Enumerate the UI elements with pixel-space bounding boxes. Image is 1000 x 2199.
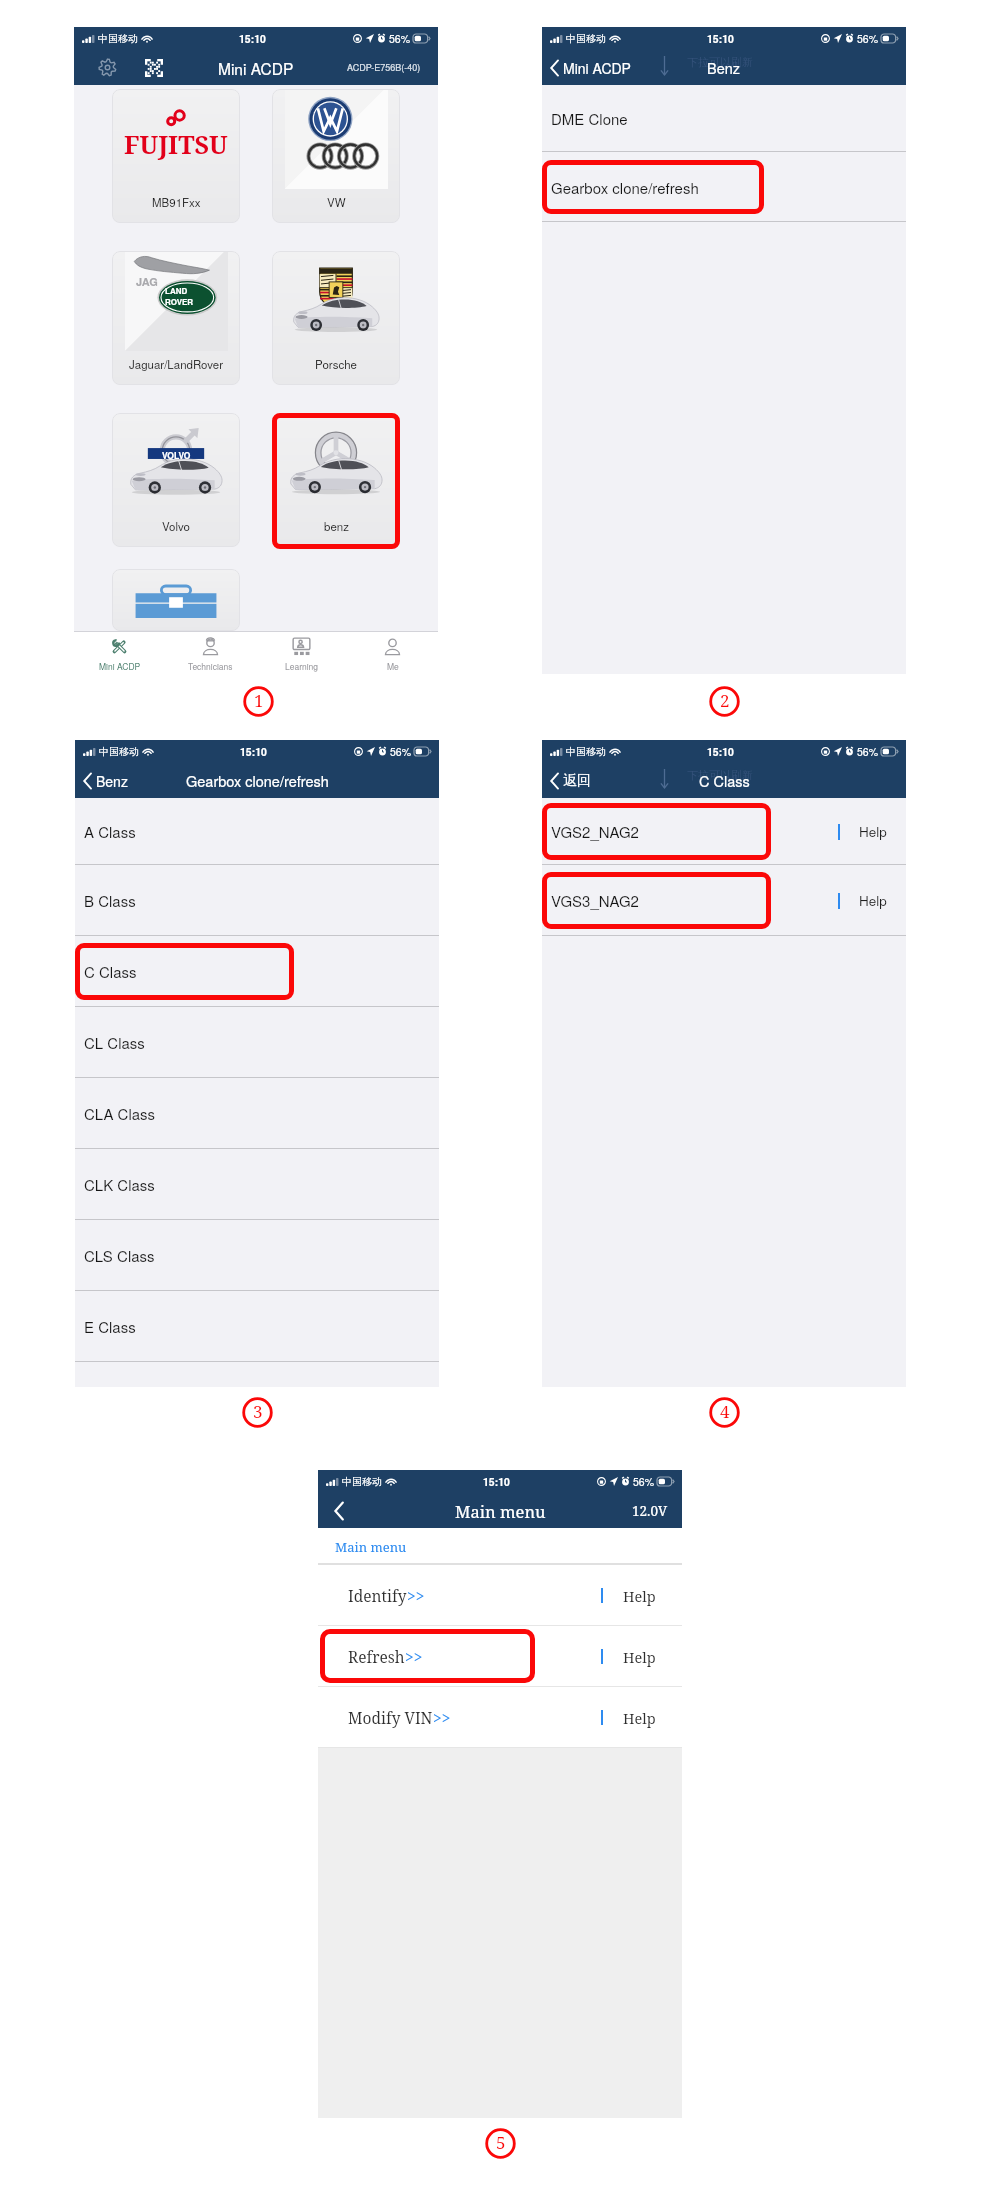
staticText: Me xyxy=(387,660,399,672)
staticText: 4 xyxy=(720,1400,730,1423)
staticText: JAG xyxy=(136,274,158,290)
staticText: ROVER xyxy=(165,296,194,307)
button[interactable]: VGS2_NAG2 xyxy=(542,798,906,865)
staticText: VOLVO xyxy=(162,449,191,461)
button[interactable]: C Class xyxy=(75,936,439,1007)
staticText: Mini ACDP xyxy=(218,57,294,79)
staticText: VGS3_NAG2 xyxy=(551,890,639,911)
staticText: DME Clone xyxy=(551,108,628,129)
staticText: 12.0V xyxy=(632,1502,668,1520)
staticText: Gearbox clone/refresh xyxy=(186,770,329,791)
staticText: Mini ACDP xyxy=(99,660,141,672)
staticText: ACDP-E756B(-40) xyxy=(347,61,421,74)
staticText: >> xyxy=(405,1646,423,1667)
staticText: CL Class xyxy=(84,1032,145,1053)
staticText: CLK Class xyxy=(84,1174,155,1195)
staticText: Help xyxy=(859,891,887,910)
button[interactable]: CL Class xyxy=(75,1007,439,1078)
staticText: 15:10 xyxy=(239,31,266,46)
staticText: benz xyxy=(324,518,349,534)
button[interactable]: Technicians xyxy=(165,632,256,676)
staticText: 15:10 xyxy=(240,744,267,759)
staticText: E Class xyxy=(84,1316,136,1337)
staticText: Help xyxy=(859,822,887,841)
button[interactable]: Help xyxy=(840,865,906,936)
staticText: 15:10 xyxy=(707,31,734,46)
button[interactable]: A Class xyxy=(75,798,439,865)
button[interactable]: Gearbox clone/refresh xyxy=(542,152,906,222)
button[interactable]: Help xyxy=(603,1687,682,1748)
button[interactable]: VOLVO xyxy=(112,413,240,547)
button[interactable]: Help xyxy=(840,798,906,865)
staticText: C Class xyxy=(84,961,137,982)
button[interactable] xyxy=(112,569,240,631)
staticText: Jaguar/LandRover xyxy=(129,356,224,372)
staticText: 中国移动 xyxy=(98,32,138,45)
staticText: 1 xyxy=(254,689,264,712)
button[interactable]: Refresh xyxy=(318,1626,682,1687)
button[interactable]: LAND xyxy=(112,251,240,385)
staticText: Help xyxy=(623,1586,656,1606)
staticText: LAND xyxy=(165,285,188,296)
staticText: Help xyxy=(623,1647,656,1667)
button[interactable]: benz xyxy=(272,413,400,547)
staticText: 56% xyxy=(857,744,879,759)
button[interactable]: DME Clone xyxy=(542,85,906,152)
button[interactable]: Settings xyxy=(97,57,118,78)
staticText: Porsche xyxy=(315,356,357,372)
staticText: 3 xyxy=(253,1400,263,1423)
button[interactable]: Porsche xyxy=(272,251,400,385)
staticText: 56% xyxy=(389,31,411,46)
staticText: 中国移动 xyxy=(566,32,606,45)
staticText: 15:10 xyxy=(707,744,734,759)
button[interactable]: Back xyxy=(328,1493,350,1528)
staticText: VW xyxy=(327,194,346,210)
staticText: MB91Fxx xyxy=(152,194,201,210)
button[interactable]: CLK Class xyxy=(75,1149,439,1220)
button[interactable]: B Class xyxy=(75,865,439,936)
staticText: 下拉可以刷新 xyxy=(687,768,753,782)
staticText: Mini ACDP xyxy=(563,58,631,78)
button[interactable]: Modify VIN xyxy=(318,1687,682,1748)
staticText: Modify VIN xyxy=(348,1707,433,1728)
button[interactable]: Back xyxy=(82,763,128,798)
staticText: Benz xyxy=(707,57,741,78)
staticText: >> xyxy=(407,1585,425,1606)
staticText: >> xyxy=(433,1707,451,1728)
staticText: 56% xyxy=(857,31,879,46)
staticText: Benz xyxy=(96,771,128,791)
staticText: 中国移动 xyxy=(566,745,606,758)
staticText: CLA Class xyxy=(84,1103,156,1124)
button[interactable]: Learning xyxy=(256,632,347,676)
button[interactable]: Me xyxy=(347,632,438,676)
staticText: B Class xyxy=(84,890,136,911)
staticText: 56% xyxy=(633,1474,655,1489)
staticText: Volvo xyxy=(162,518,190,534)
staticText: 中国移动 xyxy=(99,745,139,758)
staticText: C Class xyxy=(699,770,750,791)
staticText: Identify xyxy=(348,1585,407,1606)
button[interactable]: Identify xyxy=(318,1565,682,1626)
button[interactable]: E Class xyxy=(75,1291,439,1362)
staticText: 5 xyxy=(496,2131,506,2154)
staticText: Main menu xyxy=(335,1538,407,1556)
staticText: FUJITSU xyxy=(124,127,228,161)
staticText: Main menu xyxy=(455,1500,546,1522)
button[interactable]: CLA Class xyxy=(75,1078,439,1149)
staticText: Gearbox clone/refresh xyxy=(551,177,699,198)
button[interactable]: VGS3_NAG2 xyxy=(542,865,906,936)
button[interactable]: Back xyxy=(549,50,631,85)
button[interactable]: Scan QR code xyxy=(143,57,164,78)
button[interactable]: Help xyxy=(603,1626,682,1687)
button[interactable]: CLS Class xyxy=(75,1220,439,1291)
staticText: 2 xyxy=(720,689,730,712)
staticText: 下拉可以刷新 xyxy=(687,55,753,69)
button[interactable]: Back xyxy=(549,763,591,798)
button[interactable]: FUJITSU xyxy=(112,89,240,223)
button[interactable]: Help xyxy=(603,1565,682,1626)
staticText: Refresh xyxy=(348,1646,405,1667)
staticText: Technicians xyxy=(188,660,233,672)
staticText: Learning xyxy=(285,660,319,672)
button[interactable]: Mini ACDP xyxy=(74,632,165,676)
button[interactable]: VW xyxy=(272,89,400,223)
